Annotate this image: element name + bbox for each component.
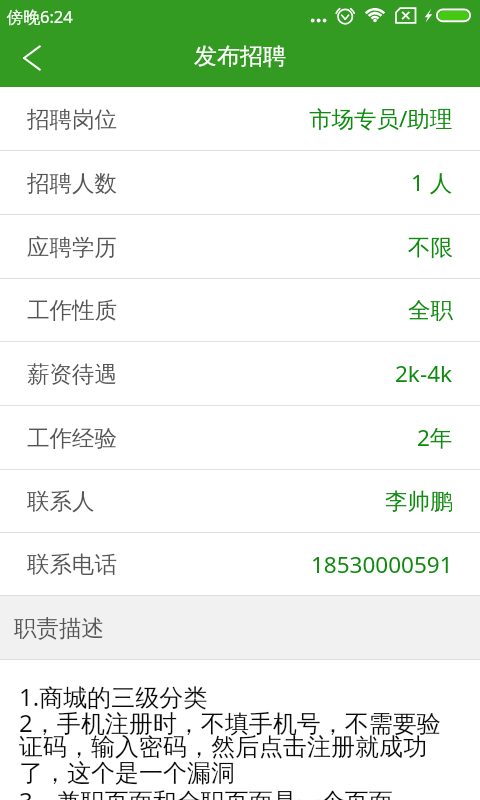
staticText: 李帅鹏 xyxy=(385,487,453,515)
staticText: 联系电话 xyxy=(27,550,117,578)
staticText: 全职 xyxy=(408,296,453,324)
staticText: 3．兼职页面和全职页面是一个页面 xyxy=(19,784,393,800)
button[interactable]: 薪资待遇 xyxy=(0,342,480,406)
staticText: 证码，输入密码，然后点击注册就成功 xyxy=(19,732,427,762)
staticText: 薪资待遇 xyxy=(27,360,117,388)
button[interactable]: Back xyxy=(0,30,58,87)
staticText: 2，手机注册时，不填手机号，不需要验 xyxy=(19,706,441,739)
button[interactable]: 工作性质 xyxy=(0,279,480,342)
staticText: 联系人 xyxy=(27,487,95,515)
staticText: 工作经验 xyxy=(27,424,117,452)
staticText: 招聘岗位 xyxy=(27,105,117,133)
staticText: 1 人 xyxy=(411,167,453,198)
staticText: 发布招聘 xyxy=(194,42,286,71)
staticText: 18530000591 xyxy=(311,549,453,580)
button[interactable]: 工作经验 xyxy=(0,406,480,470)
staticText: 了，这个是一个漏洞 xyxy=(19,758,235,788)
staticText: 1.商城的三级分类 xyxy=(19,680,208,713)
staticText: 应聘学历 xyxy=(27,233,117,261)
staticText: 2k-4k xyxy=(395,358,453,389)
staticText: 2年 xyxy=(417,422,453,453)
staticText: 不限 xyxy=(408,233,453,261)
staticText: 工作性质 xyxy=(27,296,117,324)
button[interactable]: 招聘人数 xyxy=(0,151,480,215)
staticText: 招聘人数 xyxy=(27,169,117,197)
button[interactable]: 联系电话 xyxy=(0,533,480,596)
button[interactable]: 招聘岗位 xyxy=(0,87,480,151)
button[interactable]: 应聘学历 xyxy=(0,215,480,279)
staticText: 市场专员/助理 xyxy=(309,103,453,134)
staticText: 职责描述 xyxy=(14,614,104,642)
staticText: 傍晚6:24 xyxy=(7,5,73,28)
button[interactable]: 联系人 xyxy=(0,470,480,533)
